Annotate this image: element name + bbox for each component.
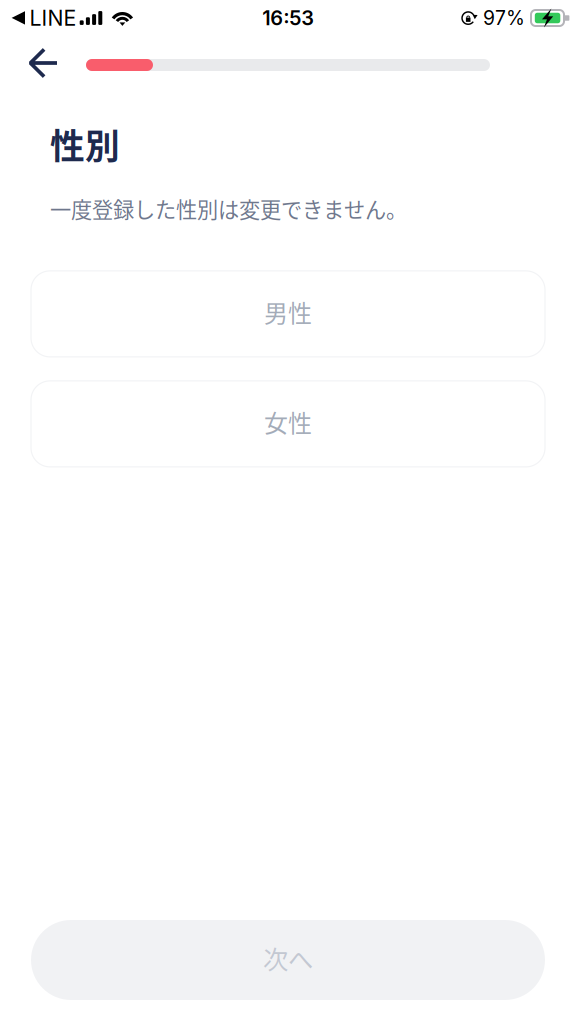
staticText: 女性 xyxy=(264,404,312,439)
staticText: 97% xyxy=(483,6,525,30)
staticText: LINE xyxy=(30,5,77,31)
button[interactable]: 女性 xyxy=(31,381,545,467)
button[interactable]: Back xyxy=(14,41,72,85)
button[interactable]: 男性 xyxy=(31,271,545,357)
staticText: 性別 xyxy=(50,119,120,169)
staticText: 次へ xyxy=(263,940,313,976)
staticText: 16:53 xyxy=(262,6,314,30)
staticText: 男性 xyxy=(264,294,312,329)
staticText: 一度登録した性別は変更できません。 xyxy=(50,193,407,224)
button[interactable]: 次へ xyxy=(31,920,545,1000)
